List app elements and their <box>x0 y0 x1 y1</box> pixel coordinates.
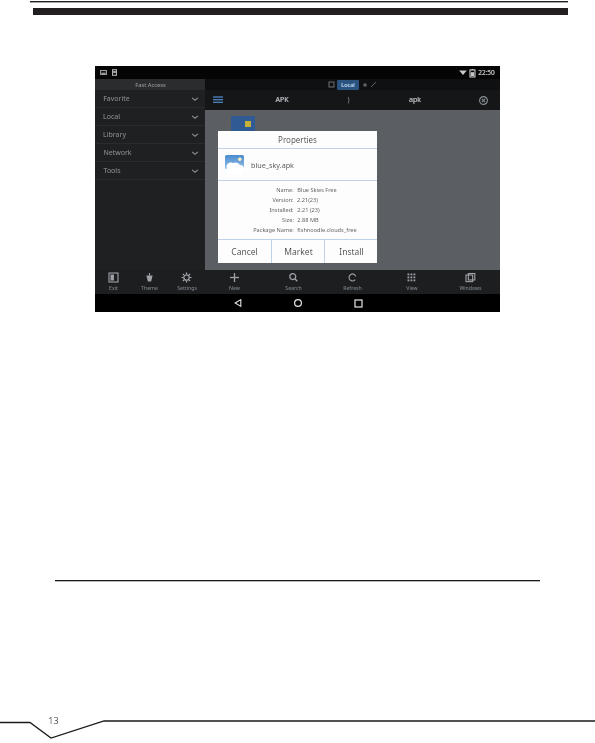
staticText: Windows <box>459 284 482 291</box>
staticText: Network <box>103 148 132 158</box>
staticText: Local <box>103 112 120 122</box>
button[interactable]: Recent apps <box>328 294 388 312</box>
button[interactable]: View <box>382 270 441 294</box>
staticText: Search <box>285 284 302 291</box>
staticText: Exit <box>109 284 118 291</box>
staticText: blue_sky.apk <box>251 160 294 170</box>
button[interactable]: Theme <box>131 270 168 294</box>
button[interactable]: Back <box>208 294 268 312</box>
staticText: Market <box>284 246 313 258</box>
button[interactable]: APK <box>231 90 333 110</box>
staticText: New <box>229 284 240 291</box>
button[interactable]: Cancel <box>218 240 271 263</box>
button[interactable]: Tools <box>95 162 205 179</box>
button[interactable]: Home <box>268 294 328 312</box>
button[interactable]: Local <box>337 80 359 90</box>
staticText: View <box>406 284 418 291</box>
staticText: Name: <box>276 186 294 194</box>
staticText: Theme <box>141 284 158 291</box>
button[interactable]: Search <box>264 270 323 294</box>
staticText: Local <box>341 81 355 89</box>
staticText: 2.21 (23) <box>297 206 320 214</box>
staticText: apk <box>409 95 421 105</box>
button[interactable]: Local <box>95 108 205 125</box>
staticText: Blue Skies Free <box>297 186 337 194</box>
staticText: 22:50 <box>478 68 495 77</box>
button[interactable]: Menu <box>205 90 231 110</box>
staticText: Size: <box>282 216 294 224</box>
staticText: 13 <box>48 714 59 726</box>
button[interactable]: Windows <box>441 270 500 294</box>
button[interactable]: Exit <box>95 270 131 294</box>
staticText: Cancel <box>231 246 258 258</box>
staticText: 2.88 MB <box>297 216 319 224</box>
staticText: Tools <box>103 166 121 176</box>
staticText: APK <box>275 95 289 105</box>
staticText: Install <box>339 246 364 258</box>
staticText: Settings <box>177 284 197 291</box>
staticText: Version: <box>272 196 294 204</box>
staticText: Favorite <box>103 94 130 104</box>
staticText: 2.21(23) <box>297 196 318 204</box>
staticText: Refresh <box>343 284 362 291</box>
button[interactable]: Install <box>325 240 377 263</box>
staticText: Fast Access <box>135 81 166 89</box>
button[interactable]: Close tab <box>466 90 500 110</box>
button[interactable]: Library <box>95 126 205 143</box>
button[interactable]: Network <box>95 144 205 161</box>
staticText: ) <box>347 95 350 105</box>
staticText: Library <box>103 130 126 140</box>
button[interactable]: Refresh <box>323 270 382 294</box>
staticText: Package Name: <box>253 226 294 234</box>
button[interactable]: Favorite <box>95 90 205 107</box>
button[interactable] <box>231 116 255 131</box>
staticText: Properties <box>278 134 317 145</box>
staticText: Installed: <box>269 206 294 214</box>
button[interactable]: Market <box>272 240 324 263</box>
button[interactable]: Settings <box>168 270 205 294</box>
staticText: fishnoodle.clouds_free <box>297 226 357 234</box>
button[interactable]: apk <box>363 90 466 110</box>
button[interactable]: New <box>205 270 264 294</box>
